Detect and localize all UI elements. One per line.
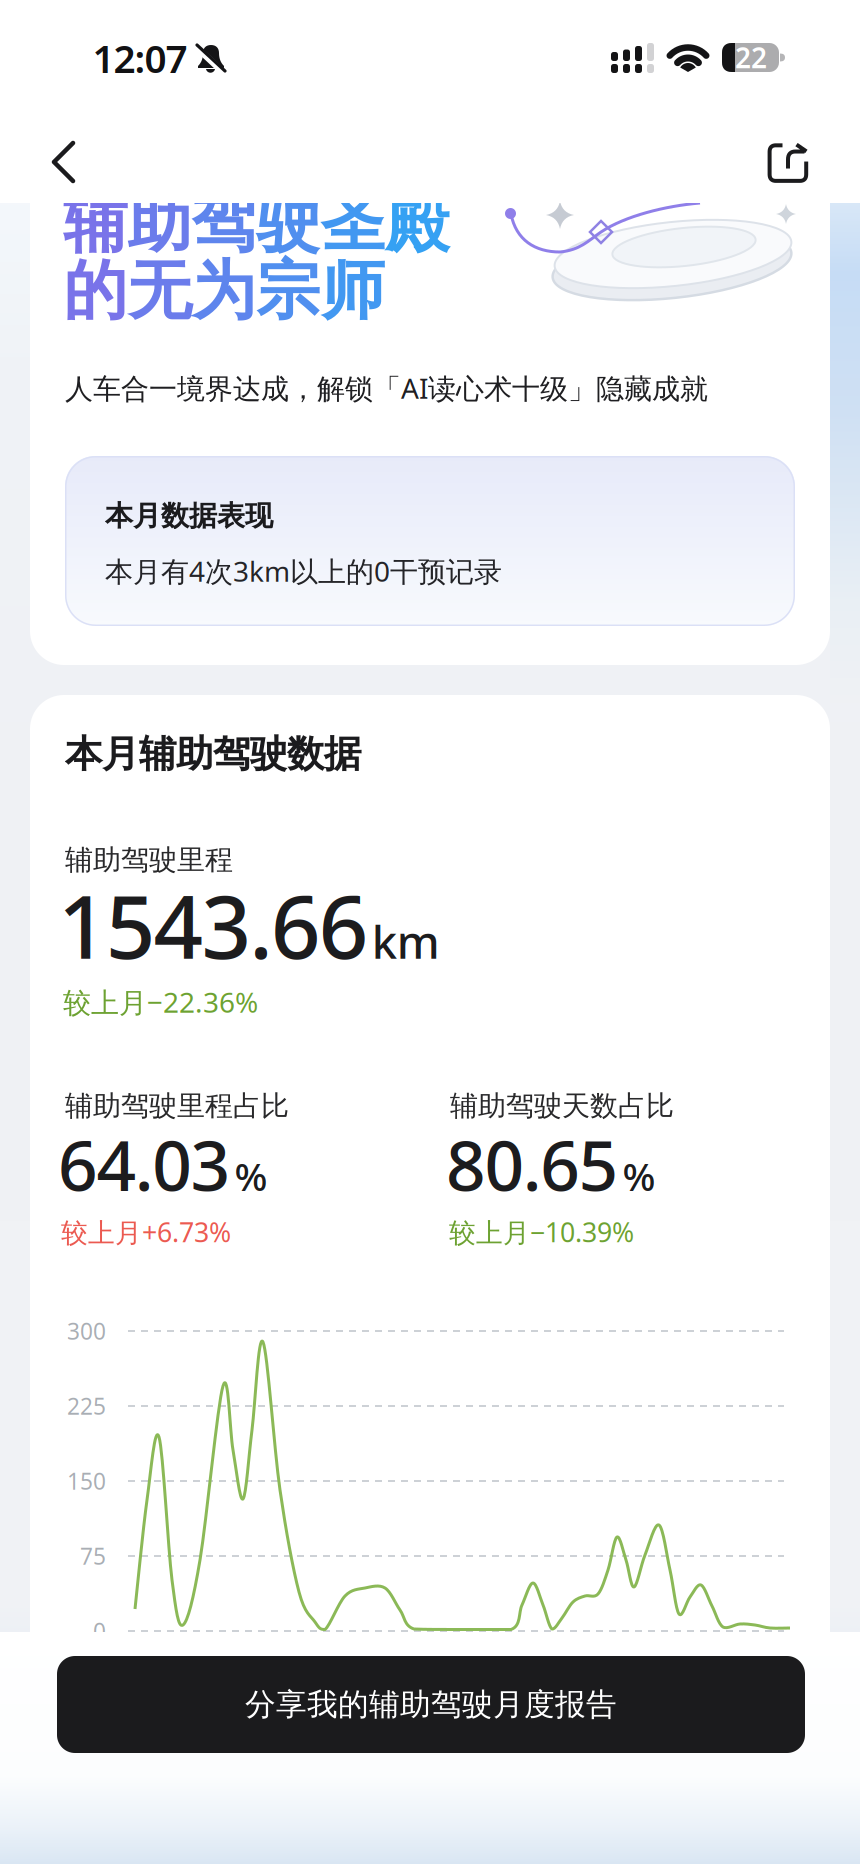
staticText: 0 (93, 1616, 106, 1646)
staticText: 300 (67, 1316, 106, 1346)
staticText: 较上月−10.39% (449, 1214, 634, 1250)
staticText: 辅助驾驶里程占比 (65, 1089, 289, 1123)
staticText: 64.03 (58, 1118, 231, 1210)
staticText: 人车合一境界达成，解锁「AI读心术十级」隐藏成就 (65, 369, 708, 407)
staticText: 助 (127, 185, 191, 263)
staticText: 150 (67, 1466, 106, 1496)
staticText: 分享我的辅助驾驶月度报告 (245, 1686, 617, 1723)
button[interactable]: Share (764, 139, 812, 191)
staticText: 辅助驾驶天数占比 (450, 1089, 674, 1123)
staticText: 圣 (320, 185, 384, 263)
staticText: 本月有4次3km以上的0干预记录 (105, 552, 502, 590)
staticText: 75 (80, 1541, 106, 1571)
staticText: 1543.66 (58, 867, 369, 983)
staticText: 本月辅助驾驶数据 (65, 731, 361, 777)
button[interactable]: Back (41, 136, 85, 188)
staticText: 驶 (256, 185, 320, 263)
staticText: 师 (321, 252, 385, 330)
button[interactable]: 分享我的辅助驾驶月度报告 (57, 1656, 805, 1753)
staticText: 辅 (63, 185, 127, 263)
staticText: km (372, 911, 440, 971)
staticText: 宗 (256, 252, 320, 330)
staticText: 12:07 (92, 32, 187, 84)
staticText: 驾 (192, 185, 256, 263)
staticText: 225 (67, 1391, 106, 1421)
staticText: 的 (63, 252, 127, 330)
staticText: % (235, 1150, 268, 1201)
staticText: 辅助驾驶里程 (65, 843, 233, 877)
staticText: 本月数据表现 (105, 499, 273, 533)
staticText: 无 (128, 252, 192, 330)
staticText: % (623, 1150, 656, 1201)
staticText: 为 (192, 252, 256, 330)
staticText: 殿 (385, 185, 449, 263)
staticText: 较上月+6.73% (61, 1214, 231, 1250)
staticText: 较上月−22.36% (63, 983, 258, 1021)
staticText: 22 (735, 39, 767, 76)
staticText: 80.65 (446, 1118, 619, 1210)
